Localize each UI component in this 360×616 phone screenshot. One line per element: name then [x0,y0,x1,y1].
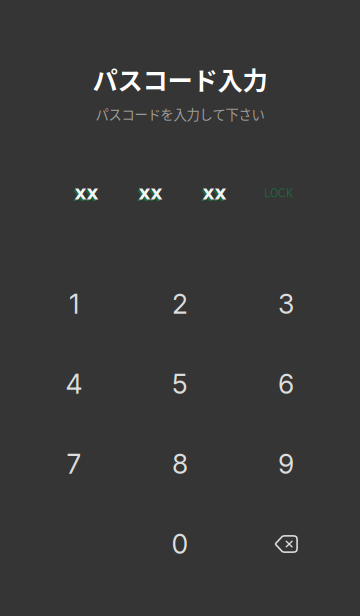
staticText: パスコード入力 [92,61,267,97]
staticText: xx [73,184,97,205]
button[interactable]: 2 [127,264,233,344]
staticText: 9 [278,448,294,480]
staticText: 4 [65,368,82,400]
staticText: xx [138,182,162,204]
staticText: 1 [69,288,79,320]
button[interactable]: 0 [127,504,233,584]
staticText: xx [201,184,225,205]
button[interactable]: 7 [21,424,127,504]
button[interactable]: 6 [233,344,339,424]
button[interactable]: Delete [233,504,339,584]
button[interactable]: 8 [127,424,233,504]
staticText: パスコードを入力して下さい [95,104,264,124]
button[interactable]: 1 [21,264,127,344]
staticText: 3 [278,288,294,320]
staticText: xx [74,182,98,204]
staticText: 8 [172,448,188,480]
staticText: 0 [171,528,188,560]
staticText: 7 [66,448,81,480]
button[interactable]: 3 [233,264,339,344]
staticText: LOCK [264,186,293,200]
button[interactable]: 4 [21,344,127,424]
staticText: xx [137,184,161,205]
staticText: xx [202,182,226,204]
button[interactable]: 9 [233,424,339,504]
staticText: 5 [172,368,188,400]
staticText: 2 [172,288,188,320]
button[interactable]: 5 [127,344,233,424]
staticText: 6 [278,368,294,400]
